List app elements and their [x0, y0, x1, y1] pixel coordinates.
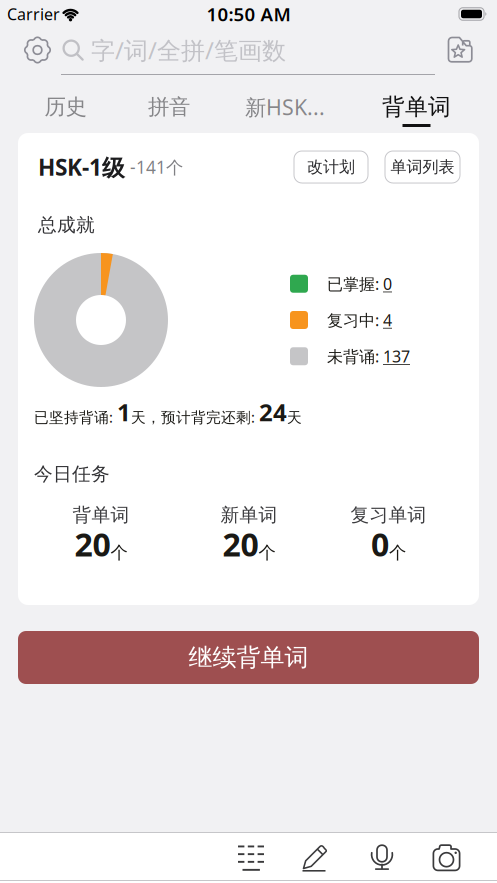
staticText: HSK-1级 — [38, 152, 125, 182]
button[interactable]: Stroke input — [238, 844, 264, 871]
staticText: 背单词 — [382, 93, 451, 121]
button[interactable]: 新HSK... — [245, 93, 325, 121]
staticText: 改计划 — [307, 157, 355, 177]
staticText: 复习单词 — [350, 503, 426, 526]
staticText: 历史 — [44, 94, 86, 120]
button[interactable]: 拼音 — [148, 94, 190, 120]
staticText: 已坚持背诵: 1天，预计背完还剩: 24天 — [34, 396, 302, 428]
staticText: -141个 — [125, 155, 183, 178]
staticText: 总成就 — [38, 213, 95, 236]
staticText: 字/词/全拼/笔画数 — [91, 34, 286, 66]
button[interactable]: Voice input — [371, 845, 393, 870]
staticText: 已掌握: 0 — [327, 273, 392, 294]
button[interactable]: 历史 — [44, 94, 86, 120]
button[interactable]: 继续背单词 — [18, 631, 479, 684]
button[interactable]: 改计划 — [294, 151, 368, 183]
button[interactable]: Search — [62, 35, 286, 65]
staticText: 拼音 — [148, 94, 190, 120]
button[interactable]: Settings — [24, 37, 50, 63]
staticText: 背单词 — [72, 503, 129, 526]
staticText: 复习中: 4 — [327, 309, 392, 331]
button[interactable]: Saved words — [448, 37, 473, 62]
button[interactable]: 背单词 — [382, 93, 451, 121]
staticText: 单词列表 — [390, 157, 454, 177]
staticText: Carrier — [7, 3, 60, 25]
staticText: 20个 — [222, 523, 275, 565]
button[interactable]: Handwriting input — [302, 843, 329, 871]
staticText: 新HSK... — [245, 93, 325, 121]
button[interactable]: Camera input — [432, 844, 460, 871]
staticText: 0个 — [371, 523, 406, 565]
button[interactable]: 单词列表 — [385, 151, 460, 183]
staticText: 未背诵: 137 — [327, 346, 410, 367]
staticText: 继续背单词 — [188, 643, 308, 672]
staticText: 今日任务 — [34, 462, 110, 485]
staticText: 10:50 AM — [206, 2, 290, 26]
staticText: 20个 — [74, 523, 127, 565]
staticText: 新单词 — [220, 503, 277, 526]
